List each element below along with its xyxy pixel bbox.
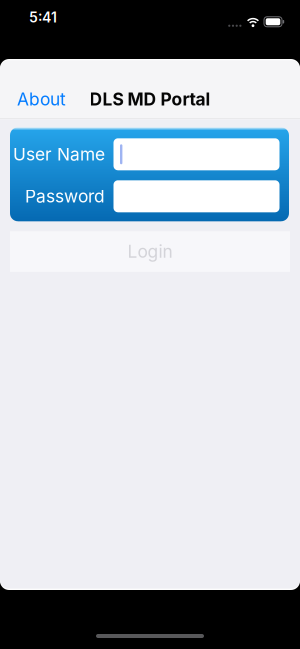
button[interactable]: About — [17, 89, 66, 110]
button[interactable]: Password — [113, 180, 279, 212]
staticText: Login — [127, 241, 172, 262]
staticText: User Name — [13, 144, 105, 165]
staticText: Password — [25, 186, 105, 207]
button[interactable]: Login — [10, 231, 290, 272]
staticText: 5:41 — [29, 9, 57, 26]
staticText: About — [17, 89, 66, 110]
button[interactable]: User Name — [113, 138, 279, 170]
staticText: DLS MD Portal — [89, 89, 210, 110]
